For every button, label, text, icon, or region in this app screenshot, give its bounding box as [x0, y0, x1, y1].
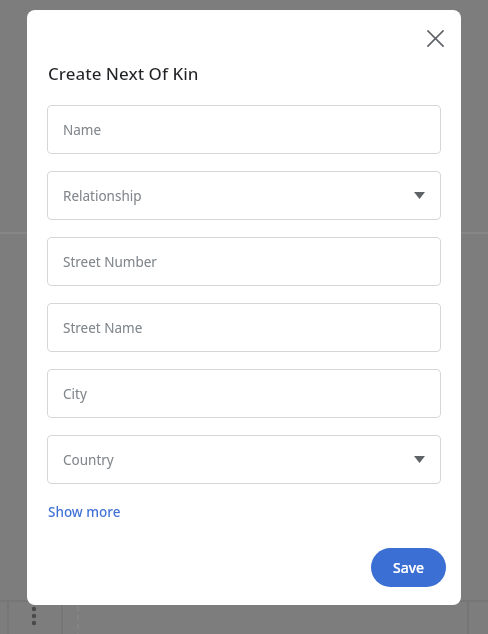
button[interactable]: Close: [415, 18, 455, 58]
staticText: Save: [393, 558, 425, 577]
staticText: Create Next Of Kin: [48, 62, 199, 85]
button[interactable]: Street Number: [47, 237, 441, 286]
button[interactable]: City: [47, 369, 441, 418]
button[interactable]: Show more: [47, 500, 122, 524]
staticText: Show more: [48, 503, 121, 521]
staticText: Relationship: [63, 187, 142, 205]
staticText: Country: [63, 451, 114, 469]
button[interactable]: Street Name: [47, 303, 441, 352]
staticText: Street Number: [63, 253, 157, 271]
staticText: Street Name: [63, 319, 143, 337]
button[interactable]: Save: [371, 548, 446, 587]
staticText: Name: [63, 121, 102, 139]
button[interactable]: Country: [47, 435, 441, 484]
button[interactable]: Name: [47, 105, 441, 154]
staticText: City: [63, 385, 87, 403]
button[interactable]: Relationship: [47, 171, 441, 220]
